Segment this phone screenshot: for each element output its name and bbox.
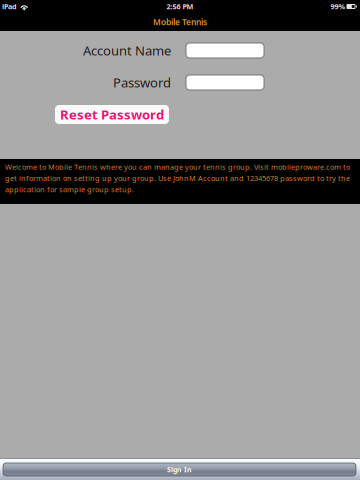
staticText: Reset Password bbox=[60, 106, 164, 123]
staticText: Mobile Tennis bbox=[153, 16, 207, 28]
staticText: Password bbox=[113, 74, 171, 91]
staticText: Account Name bbox=[83, 42, 171, 59]
staticText: 99% bbox=[330, 2, 344, 11]
staticText: 2:56 PM bbox=[166, 2, 193, 11]
staticText: Sign In bbox=[167, 465, 192, 474]
staticText: Welcome to Mobile Tennis where you can m… bbox=[5, 162, 350, 194]
staticText: iPad bbox=[2, 2, 17, 11]
button[interactable]: Sign In bbox=[0, 459, 360, 480]
button[interactable]: Reset Password bbox=[55, 105, 169, 124]
